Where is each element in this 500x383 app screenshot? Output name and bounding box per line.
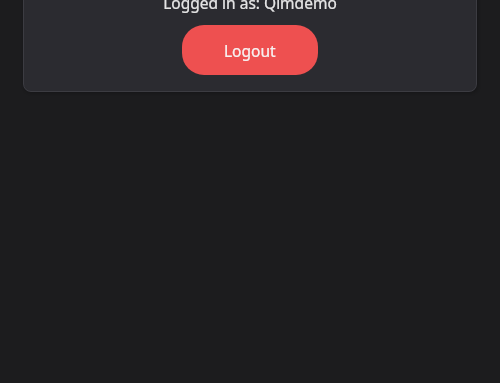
staticText: Logged in as: Qimdemo xyxy=(163,0,337,13)
button[interactable]: Logout xyxy=(182,25,318,75)
staticText: Logout xyxy=(224,40,276,61)
